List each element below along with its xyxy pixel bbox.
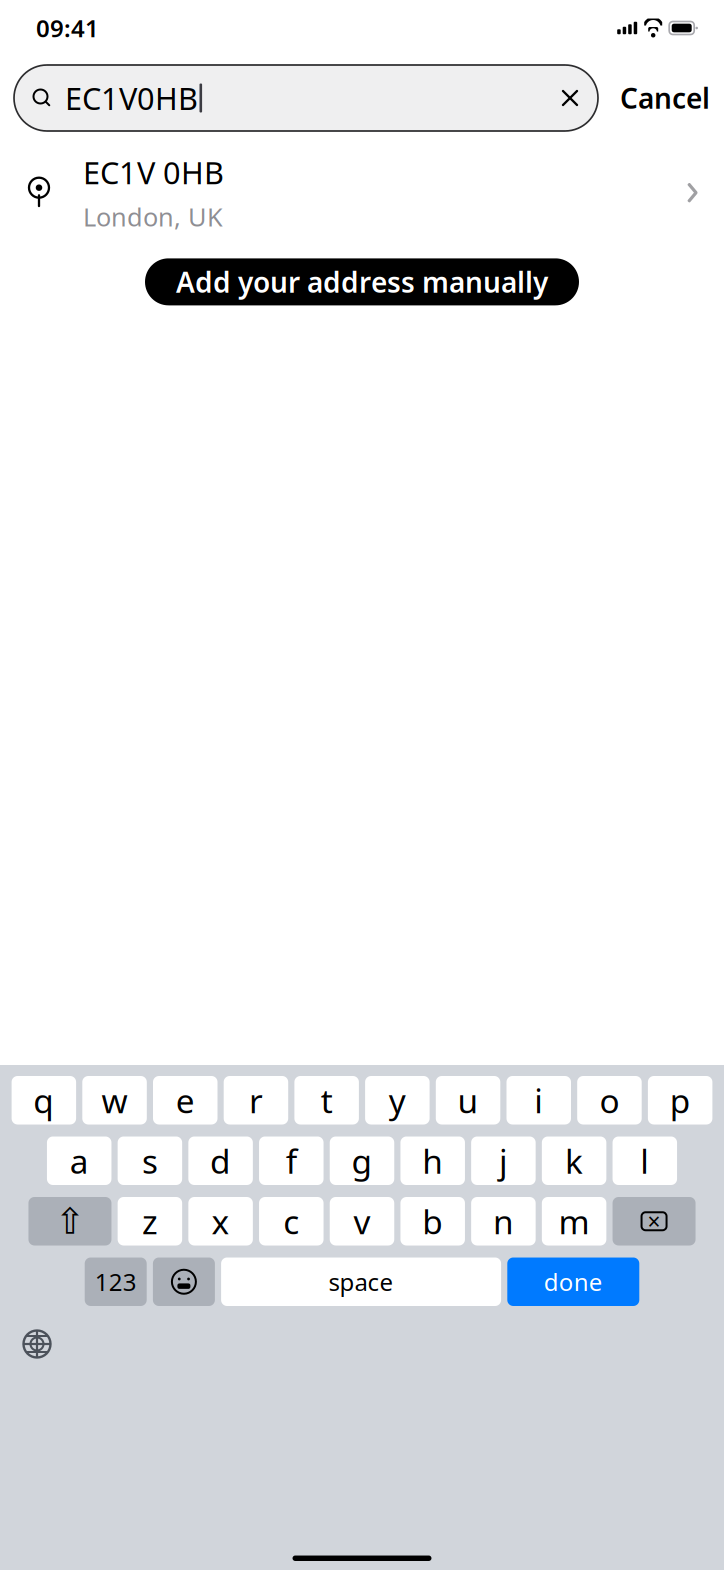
button[interactable]: q — [12, 1076, 76, 1124]
button[interactable]: Add your address manually — [145, 258, 579, 305]
button[interactable]: EC1V0HB — [14, 65, 598, 131]
staticText: space — [329, 1266, 394, 1298]
staticText: 123 — [95, 1266, 137, 1298]
button[interactable]: s — [118, 1136, 182, 1185]
staticText: a — [70, 1139, 89, 1183]
staticText: e — [176, 1078, 195, 1122]
staticText: i — [534, 1078, 543, 1122]
button[interactable]: g — [330, 1136, 394, 1185]
staticText: done — [544, 1266, 603, 1298]
button[interactable]: 123 — [85, 1257, 147, 1306]
button[interactable]: EC1V 0HB — [0, 140, 724, 245]
staticText: r — [249, 1078, 263, 1122]
staticText: p — [670, 1078, 691, 1122]
staticText: d — [210, 1139, 231, 1183]
button[interactable]: k — [542, 1136, 606, 1185]
button[interactable]: z — [118, 1197, 182, 1245]
button[interactable]: Cancel — [598, 65, 716, 131]
staticText: j — [499, 1139, 508, 1183]
staticText: o — [599, 1078, 619, 1122]
button[interactable]: p — [648, 1076, 712, 1124]
staticText: EC1V0HB — [65, 78, 198, 118]
button[interactable]: e — [153, 1076, 217, 1124]
button[interactable]: b — [400, 1197, 465, 1245]
button[interactable]: Change keyboard language — [12, 1321, 62, 1367]
staticText: z — [142, 1199, 158, 1243]
staticText: x — [212, 1199, 230, 1243]
staticText: EC1V 0HB — [83, 152, 224, 193]
button[interactable]: j — [471, 1136, 536, 1185]
staticText: g — [351, 1139, 372, 1183]
staticText: ⇧ — [55, 1201, 85, 1242]
button[interactable]: t — [294, 1076, 359, 1124]
button[interactable]: Delete — [612, 1197, 695, 1245]
staticText: v — [353, 1199, 370, 1243]
button[interactable]: done — [507, 1257, 639, 1306]
staticText: m — [559, 1199, 590, 1243]
button[interactable]: v — [330, 1197, 394, 1245]
button[interactable]: space — [221, 1257, 501, 1306]
button[interactable]: h — [400, 1136, 465, 1185]
staticText: u — [458, 1078, 479, 1122]
button[interactable]: u — [436, 1076, 500, 1124]
staticText: b — [422, 1199, 443, 1243]
staticText: Cancel — [620, 79, 710, 117]
button[interactable]: i — [506, 1076, 571, 1124]
staticText: y — [389, 1078, 406, 1122]
staticText: n — [493, 1199, 514, 1243]
staticText: q — [33, 1078, 54, 1122]
button[interactable]: o — [577, 1076, 642, 1124]
button[interactable]: Emoji — [153, 1257, 215, 1306]
staticText: s — [142, 1139, 158, 1183]
button[interactable]: c — [259, 1197, 324, 1245]
button[interactable]: a — [47, 1136, 111, 1185]
button[interactable]: f — [259, 1136, 324, 1185]
staticText: l — [640, 1139, 649, 1183]
button[interactable]: d — [188, 1136, 253, 1185]
staticText: k — [565, 1139, 583, 1183]
button[interactable]: y — [365, 1076, 430, 1124]
button[interactable]: m — [542, 1197, 606, 1245]
staticText: c — [283, 1199, 299, 1243]
staticText: h — [422, 1139, 443, 1183]
staticText: Add your address manually — [176, 263, 548, 300]
staticText: t — [321, 1078, 333, 1122]
staticText: f — [286, 1139, 297, 1183]
button[interactable]: n — [471, 1197, 536, 1245]
staticText: w — [102, 1078, 128, 1122]
staticText: × — [647, 1206, 660, 1236]
button[interactable]: r — [224, 1076, 288, 1124]
staticText: 09:41 — [36, 12, 99, 44]
button[interactable]: Shift — [28, 1197, 111, 1245]
button[interactable]: x — [188, 1197, 253, 1245]
staticText: London, UK — [83, 200, 223, 233]
button[interactable]: w — [82, 1076, 147, 1124]
button[interactable]: l — [612, 1136, 677, 1185]
